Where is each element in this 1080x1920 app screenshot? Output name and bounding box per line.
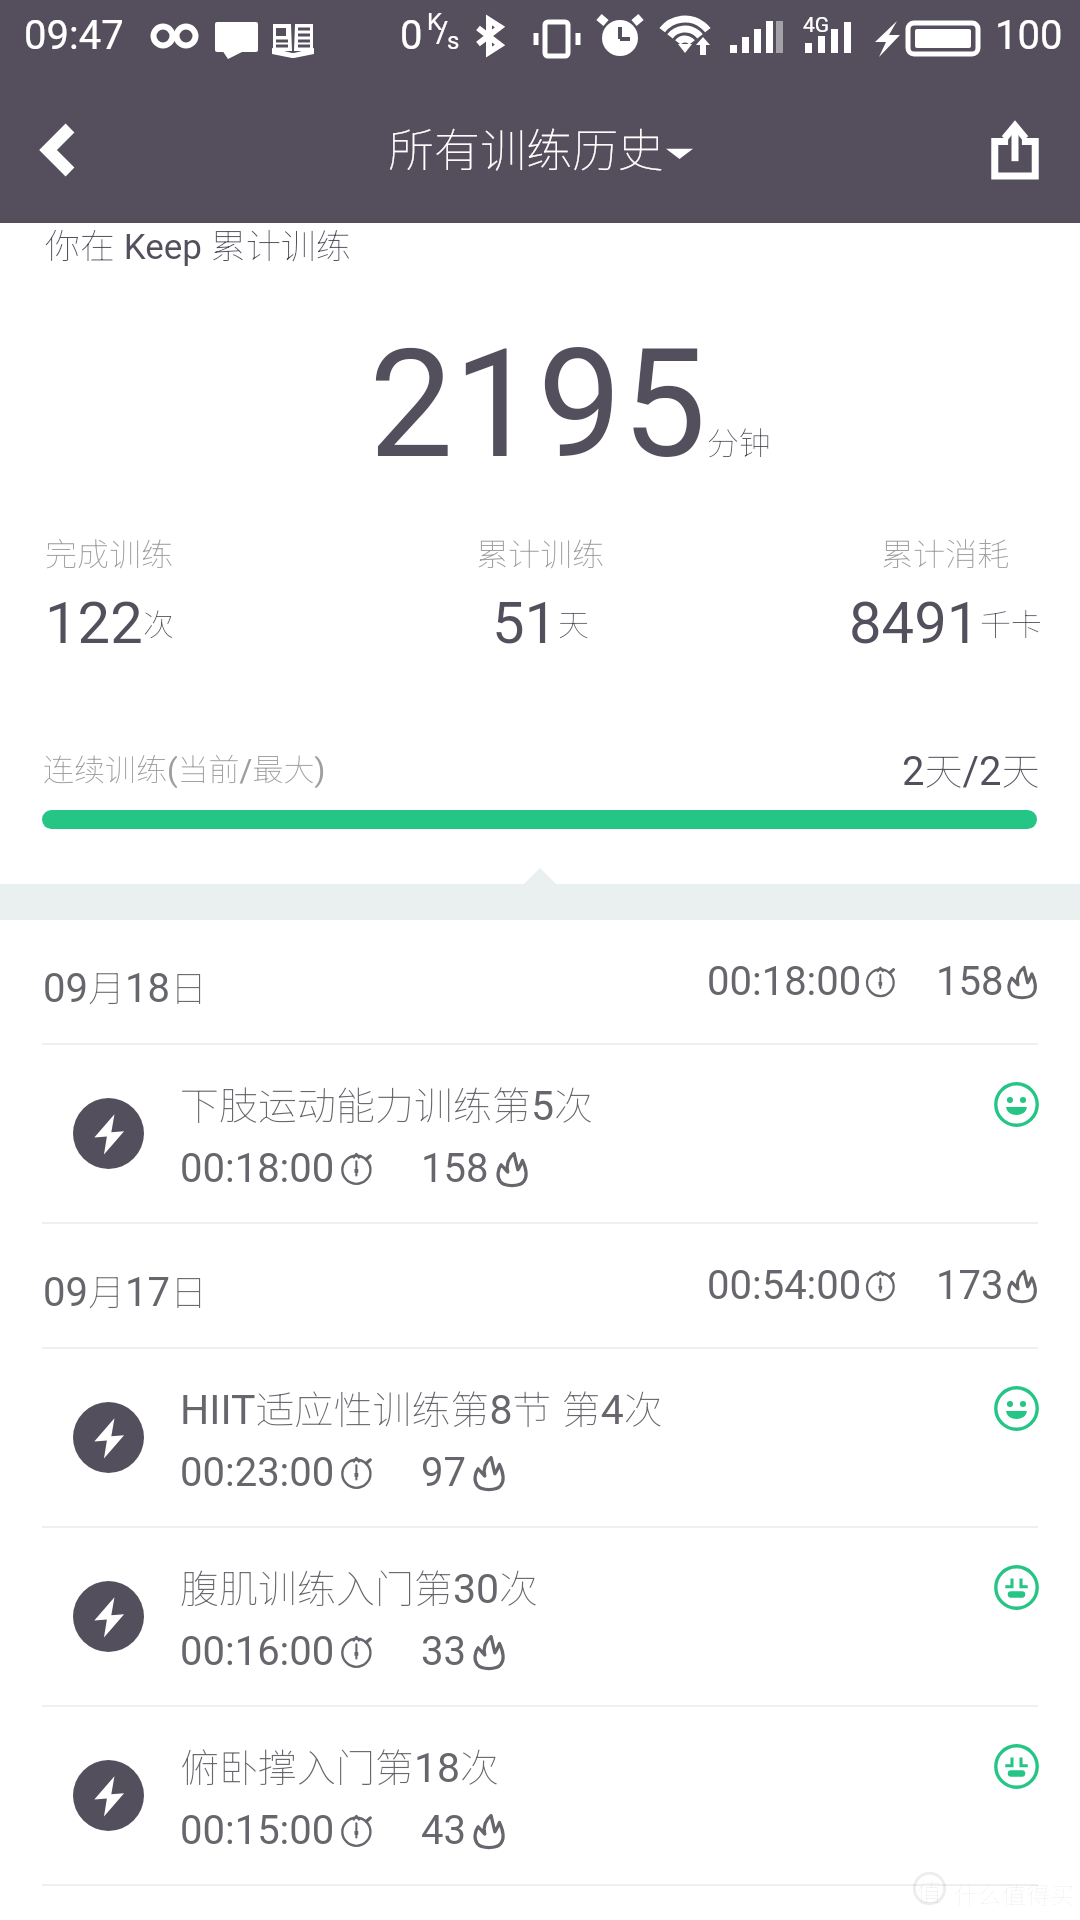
staticText: HIIT适应性训练第8节 第4次 bbox=[180, 1379, 663, 1435]
button[interactable]: 下肢运动能力训练第5次 bbox=[0, 1045, 1080, 1222]
staticText: 00:16:00 bbox=[180, 1628, 335, 1675]
staticText: / bbox=[436, 14, 449, 49]
staticText: 00:23:00 bbox=[180, 1449, 335, 1496]
staticText: 00:15:00 bbox=[180, 1807, 335, 1854]
staticText: 158 bbox=[421, 1145, 489, 1192]
staticText: 43 bbox=[421, 1807, 466, 1854]
staticText: 158 bbox=[936, 958, 1004, 1005]
staticText: 千卡 bbox=[980, 600, 1042, 645]
staticText: 累计消耗 bbox=[881, 529, 1010, 575]
staticText: 下肢运动能力训练第5次 bbox=[180, 1075, 594, 1131]
staticText: 00:18:00 bbox=[707, 958, 862, 1005]
staticText: 0 bbox=[400, 12, 423, 59]
staticText: 所有训练历史 bbox=[388, 114, 664, 181]
staticText: 100 bbox=[995, 12, 1063, 59]
staticText: 33 bbox=[421, 1628, 466, 1675]
staticText: 8491 bbox=[849, 589, 980, 657]
button[interactable]: Back bbox=[0, 110, 116, 189]
staticText: 00:18:00 bbox=[180, 1145, 335, 1192]
staticText: 2天/2天 bbox=[902, 741, 1040, 796]
staticText: 分钟 bbox=[707, 418, 772, 464]
staticText: 俯卧撑入门第18次 bbox=[180, 1737, 500, 1793]
staticText: 累计训练 bbox=[476, 529, 605, 575]
button[interactable]: 所有训练历史 bbox=[0, 114, 1080, 181]
button[interactable]: 俯卧撑入门第18次 bbox=[0, 1707, 1080, 1884]
staticText: 值 bbox=[916, 1872, 943, 1905]
staticText: 2195 bbox=[369, 317, 707, 493]
staticText: 173 bbox=[936, 1262, 1004, 1309]
button[interactable]: HIIT适应性训练第8节 第4次 bbox=[0, 1349, 1080, 1526]
staticText: 次 bbox=[143, 600, 174, 645]
button[interactable]: Share bbox=[957, 110, 1073, 189]
staticText: 09月18日 bbox=[43, 959, 207, 1013]
staticText: 4G bbox=[803, 13, 830, 38]
button[interactable]: 腹肌训练入门第30次 bbox=[0, 1528, 1080, 1705]
staticText: 122 bbox=[45, 589, 143, 657]
staticText: 完成训练 bbox=[45, 529, 174, 575]
staticText: 09月17日 bbox=[43, 1263, 207, 1317]
staticText: 什么值得买 bbox=[954, 1876, 1074, 1911]
staticText: 51 bbox=[492, 589, 558, 657]
staticText: K bbox=[427, 8, 443, 36]
staticText: 腹肌训练入门第30次 bbox=[180, 1558, 539, 1614]
staticText: 天 bbox=[558, 600, 589, 645]
staticText: 你在 Keep 累计训练 bbox=[45, 218, 351, 269]
staticText: s bbox=[447, 27, 460, 55]
staticText: 连续训练(当前/最大) bbox=[43, 745, 326, 790]
staticText: 09:47 bbox=[24, 12, 124, 59]
staticText: 00:54:00 bbox=[707, 1262, 862, 1309]
staticText: 97 bbox=[421, 1449, 466, 1496]
